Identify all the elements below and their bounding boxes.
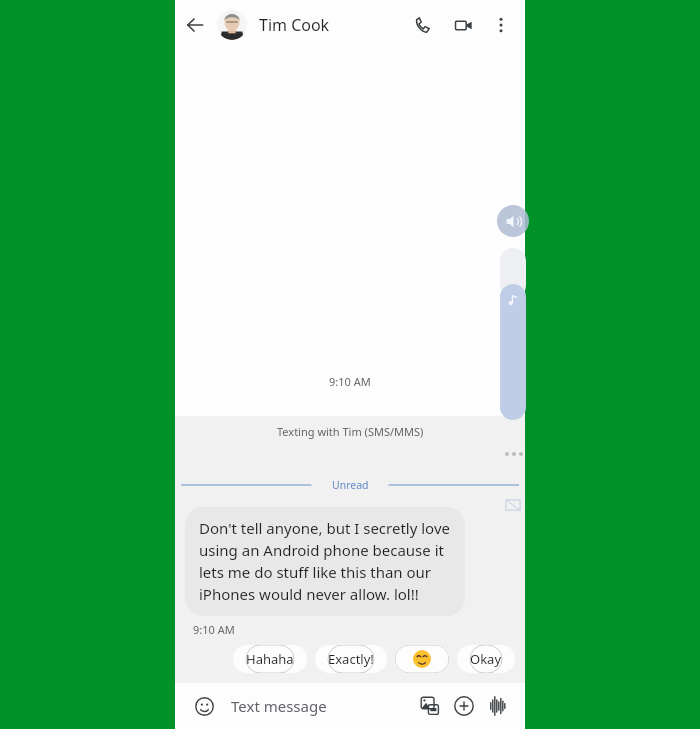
button[interactable]: Hahaha	[233, 645, 307, 673]
button[interactable]: Smile reaction	[395, 645, 449, 673]
staticText: 9:10 AM	[193, 622, 235, 637]
staticText: Hahaha	[246, 650, 294, 668]
button[interactable]: Emoji	[189, 691, 219, 721]
staticText: Text message	[231, 696, 327, 716]
button[interactable]: Attach image	[413, 689, 447, 723]
button[interactable]: More options	[483, 7, 519, 43]
staticText: Don't tell anyone, but I secretly love u…	[199, 518, 451, 605]
staticText: Tim Cook	[259, 14, 330, 36]
button[interactable]: Back	[175, 5, 215, 45]
button[interactable]: Volume	[497, 205, 529, 237]
button[interactable]: Okay	[457, 645, 515, 673]
staticText: Okay	[470, 650, 502, 668]
button[interactable]: Exactly!	[315, 645, 387, 673]
button[interactable]: Add attachment	[447, 689, 481, 723]
staticText: Exactly!	[328, 650, 374, 668]
button[interactable]: Media volume slider	[500, 284, 526, 420]
button[interactable]: Call	[403, 5, 443, 45]
button[interactable]: Record voice message	[481, 689, 515, 723]
staticText: 9:10 AM	[329, 374, 371, 389]
staticText: Texting with Tim (SMS/MMS)	[277, 424, 424, 439]
button[interactable]: Don't tell anyone, but I secretly love u…	[185, 507, 465, 616]
button[interactable]: Video call	[443, 5, 483, 45]
button[interactable]: Text message	[231, 696, 413, 716]
staticText: Unread	[332, 478, 369, 492]
